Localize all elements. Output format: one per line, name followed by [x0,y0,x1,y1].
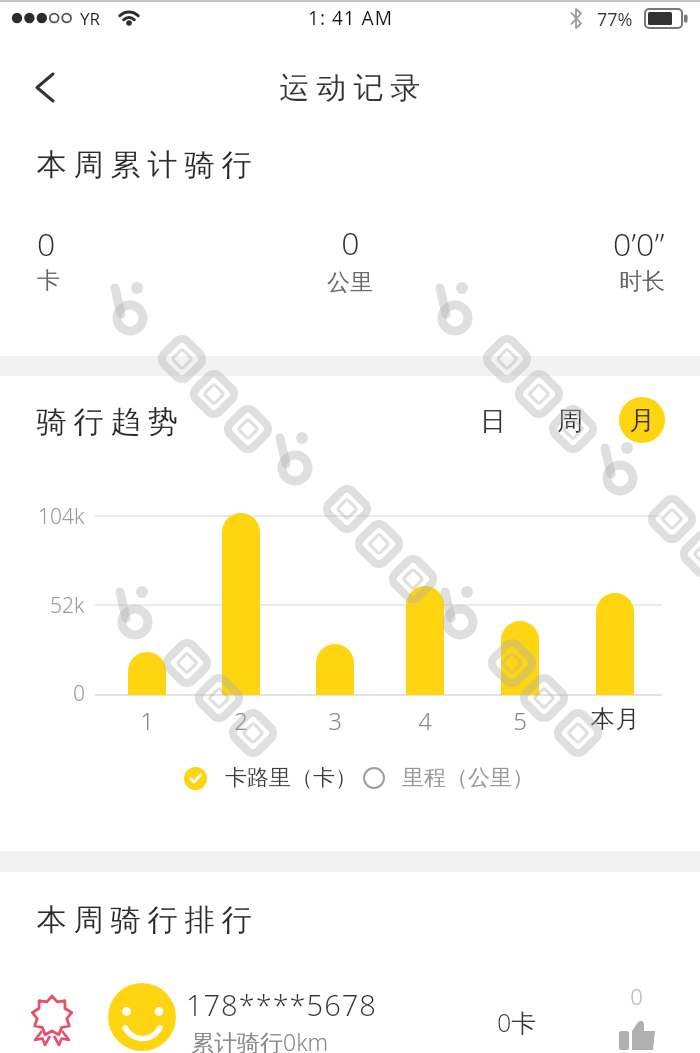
staticText: 178****5678 [186,985,377,1024]
staticText: 里程（公里） [402,764,534,792]
button[interactable]: 月 [619,397,665,443]
staticText: 本月 [590,704,640,734]
staticText: 日 [480,405,506,438]
button[interactable]: 卡路里（卡） [184,764,357,792]
staticText: 0 [341,221,360,261]
staticText: 公里 [327,268,373,297]
staticText: 2 [234,704,248,734]
staticText: 4 [418,704,432,734]
staticText: 周 [557,405,583,438]
staticText: 52k [50,591,85,619]
button[interactable]: 178****5678 [0,960,700,1053]
staticText: 77% [597,7,633,32]
staticText: 月 [629,404,655,437]
staticText: 卡 [37,266,60,295]
staticText: 骑行趋势 [33,403,181,441]
staticText: 0 [73,679,85,707]
staticText: 0卡 [497,1005,537,1039]
staticText: 本周骑行排行 [33,901,255,939]
staticText: 0’0” [613,222,665,262]
staticText: 时长 [619,267,665,296]
staticText: 运动记录 [276,69,424,107]
staticText: 累计骑行0km [191,1026,329,1053]
staticText: 0 [630,981,643,1009]
staticText: 1: 41 AM [308,5,393,31]
staticText: 104k [38,502,85,530]
staticText: 3 [328,704,342,734]
staticText: 卡路里（卡） [225,764,357,792]
button[interactable] [20,67,64,107]
staticText: 本周累计骑行 [33,146,255,184]
button[interactable]: 日 [0,0,50,40]
staticText: 1 [140,704,154,734]
staticText: 5 [513,704,527,734]
staticText: 0 [37,222,56,266]
button[interactable]: 里程（公里） [363,764,534,792]
button[interactable]: 周 [0,0,50,40]
staticText: YR [80,7,101,30]
